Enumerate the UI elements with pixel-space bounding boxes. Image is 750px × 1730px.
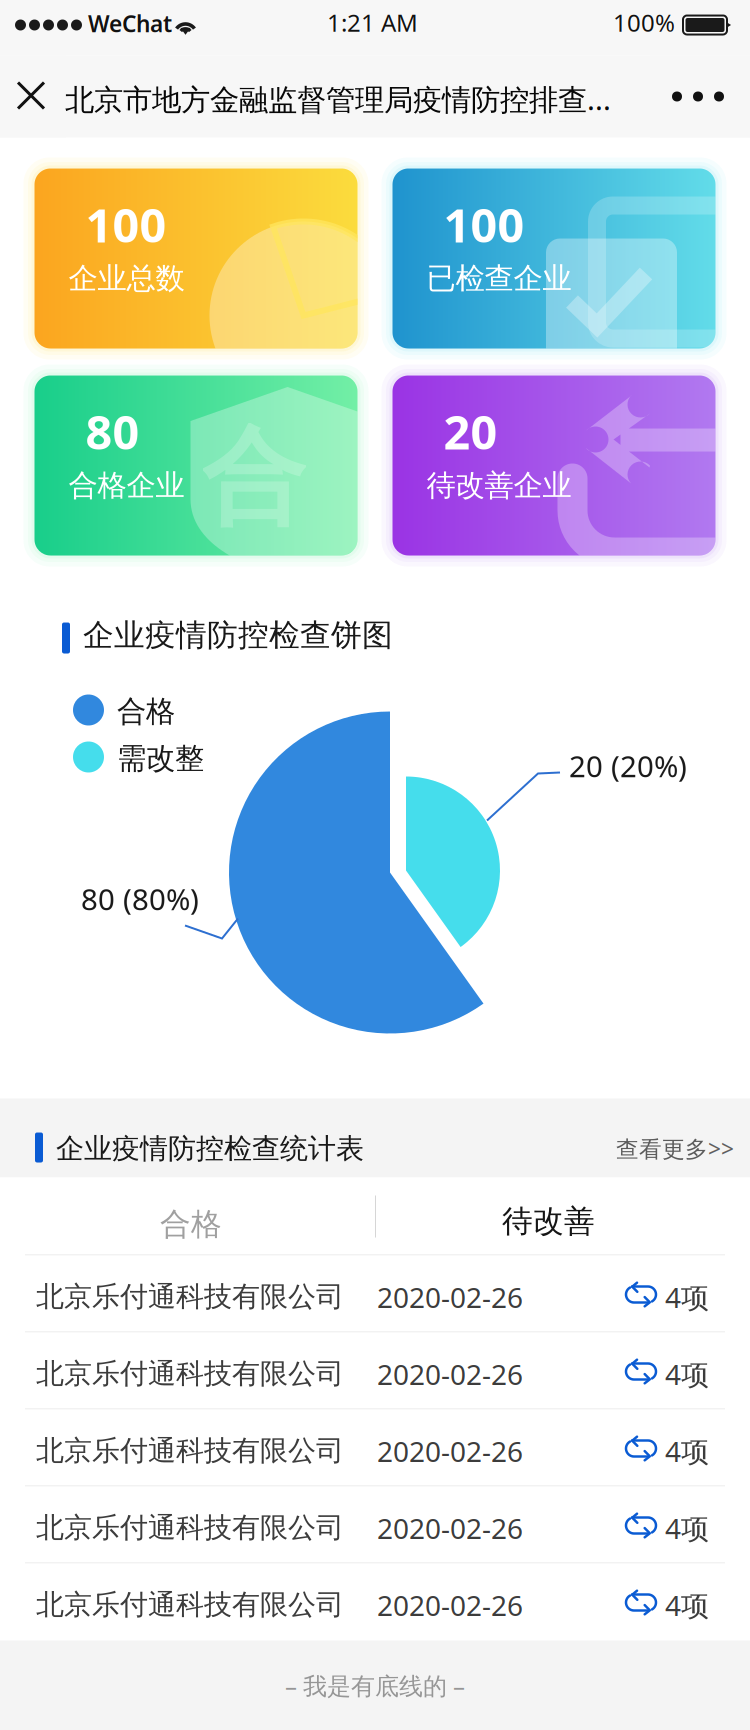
staticText: 企业疫情防控检查统计表 [56,1131,364,1166]
staticText: 1:21 AM [327,6,418,38]
staticText: 2020-02-26 [377,1432,523,1470]
button[interactable]: 北京乐付通科技有限公司 [0,1332,750,1409]
staticText: 4项 [665,1432,709,1470]
button[interactable]: Close [0,55,66,137]
staticText: 100% [613,6,675,38]
staticText: 100 [85,193,166,255]
button[interactable]: 北京乐付通科技有限公司 [0,1409,750,1486]
staticText: 2020-02-26 [377,1509,523,1547]
staticText: 北京市地方金融监督管理局疫情防控排查... [65,79,611,118]
staticText: 4项 [665,1586,709,1624]
staticText: 合 [201,414,305,542]
staticText: 北京乐付通科技有限公司 [36,1510,344,1545]
staticText: 4项 [665,1278,709,1316]
staticText: 20 (20%) [569,746,687,785]
staticText: 企业总数 [68,260,184,296]
staticText: 待改善 [502,1202,595,1240]
staticText: 查看更多>> [616,1133,734,1164]
staticText: WeChat [88,8,172,39]
staticText: 需改整 [117,740,204,776]
staticText: 2020-02-26 [377,1278,523,1316]
button[interactable]: 北京乐付通科技有限公司 [0,1486,750,1563]
staticText: 4项 [665,1509,709,1547]
staticText: 北京乐付通科技有限公司 [36,1433,344,1468]
staticText: 北京乐付通科技有限公司 [36,1279,344,1314]
button[interactable]: 100 [23,157,368,359]
staticText: 2020-02-26 [377,1355,523,1393]
button[interactable]: 合 [23,364,368,566]
staticText: 北京乐付通科技有限公司 [36,1356,344,1391]
staticText: 合格 [160,1205,222,1243]
button[interactable]: 合格 [0,1177,375,1255]
button[interactable]: 查看更多>> [0,1098,750,1177]
staticText: 合格企业 [68,467,184,503]
staticText: – 我是有底线的 – [285,1670,465,1701]
staticText: 北京乐付通科技有限公司 [36,1587,344,1622]
button[interactable]: 北京乐付通科技有限公司 [0,1563,750,1640]
staticText: 100 [443,193,524,255]
staticText: 2020-02-26 [377,1586,523,1624]
button[interactable]: 100 [381,157,726,359]
staticText: 20 [443,400,497,462]
staticText: 待改善企业 [426,467,571,503]
staticText: 80 (80%) [81,879,199,918]
button[interactable]: More [650,55,750,137]
button[interactable]: 20 [381,364,726,566]
button[interactable]: 北京乐付通科技有限公司 [0,1255,750,1332]
button[interactable]: 待改善 [375,1177,750,1255]
staticText: 80 [85,400,139,462]
staticText: 合格 [117,693,175,729]
staticText: 4项 [665,1355,709,1393]
staticText: 已检查企业 [426,260,571,296]
staticText: 企业疫情防控检查饼图 [83,616,393,654]
